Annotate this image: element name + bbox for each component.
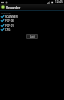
staticText: Recorder [6, 5, 21, 9]
button[interactable]: PCF 01 [0, 23, 64, 28]
staticText: PCF 00 [5, 19, 14, 23]
staticText: CFG [5, 28, 11, 32]
staticText: 12:45 [55, 0, 63, 4]
staticText: Add [30, 35, 35, 39]
button[interactable]: CFG [0, 27, 64, 32]
button[interactable]: SCANNER [0, 14, 64, 19]
staticText: SCANNER [5, 15, 18, 19]
button[interactable]: App icon [0, 4, 64, 10]
staticText: PCF 01 [5, 24, 14, 28]
button[interactable]: PCF 00 [0, 18, 64, 23]
staticText: Select all [1, 11, 11, 14]
other: App icon [1, 5, 5, 9]
button[interactable]: Add [26, 34, 38, 39]
